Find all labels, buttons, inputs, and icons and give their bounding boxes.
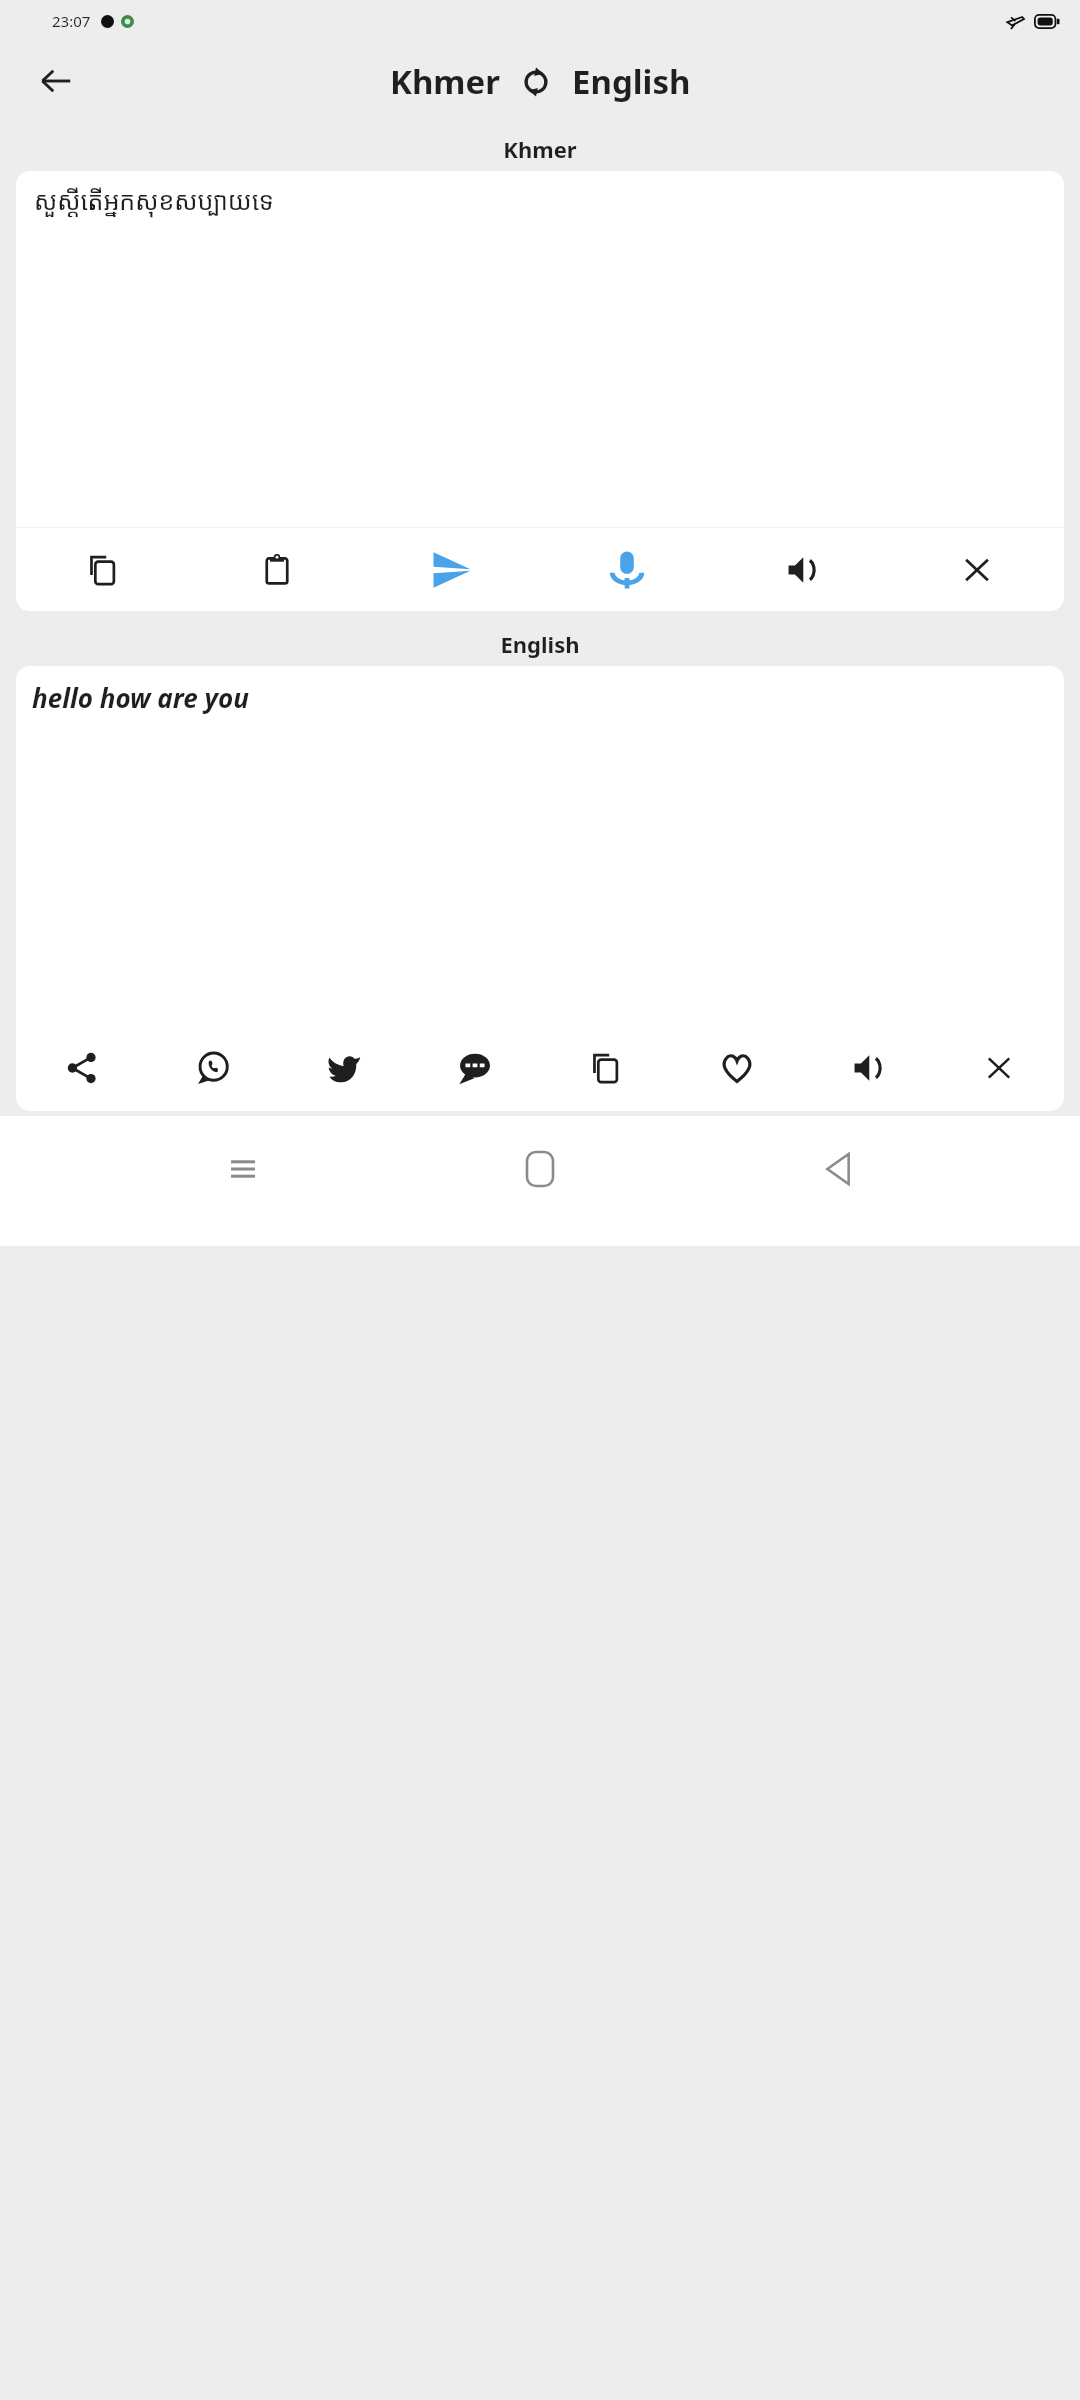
staticText: hello how are you bbox=[32, 680, 249, 715]
button[interactable]: Home bbox=[485, 1134, 595, 1204]
staticText: សួស្តីតើអ្នកសុខសប្បាយទេ bbox=[34, 183, 274, 217]
staticText: English bbox=[500, 629, 580, 659]
button[interactable]: Khmer bbox=[386, 59, 504, 104]
button[interactable]: Speak bbox=[714, 528, 889, 611]
button[interactable]: Swap languages bbox=[514, 60, 558, 104]
button[interactable]: Clear bbox=[889, 528, 1064, 611]
button[interactable]: WhatsApp bbox=[147, 1025, 278, 1111]
staticText: Khmer bbox=[503, 134, 577, 164]
staticText: 23:07 bbox=[52, 11, 91, 31]
button[interactable]: Translate bbox=[364, 528, 539, 611]
button[interactable]: Close bbox=[933, 1025, 1064, 1111]
button[interactable]: Voice input bbox=[539, 528, 714, 611]
button[interactable]: Speak bbox=[802, 1025, 933, 1111]
staticText: Khmer bbox=[390, 59, 500, 104]
staticText: English bbox=[572, 59, 691, 104]
button[interactable]: English bbox=[568, 59, 695, 104]
button[interactable]: Back bbox=[783, 1134, 893, 1204]
button[interactable]: Twitter bbox=[278, 1025, 409, 1111]
button[interactable]: Paste bbox=[190, 528, 364, 611]
button[interactable]: Favorite bbox=[671, 1025, 802, 1111]
button[interactable]: SMS bbox=[409, 1025, 540, 1111]
button[interactable]: Back bbox=[26, 51, 86, 111]
button[interactable]: Copy bbox=[540, 1025, 671, 1111]
button[interactable]: Share bbox=[16, 1025, 147, 1111]
button[interactable]: Copy bbox=[16, 528, 190, 611]
button[interactable]: Recents bbox=[188, 1134, 298, 1204]
